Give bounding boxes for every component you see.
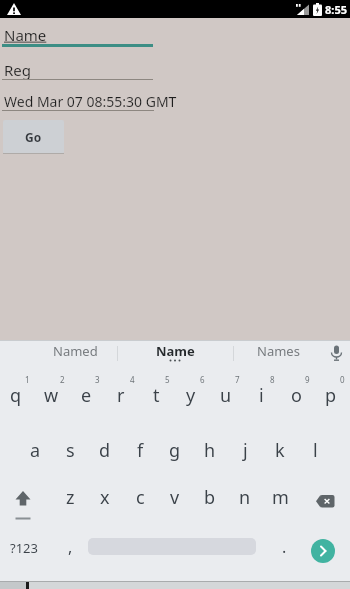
staticText: 3 [95, 374, 100, 385]
staticText: p [325, 383, 337, 408]
staticText: a [30, 438, 41, 463]
staticText: Reg [4, 60, 32, 80]
staticText: 0 [340, 374, 345, 385]
staticText: l [313, 438, 318, 463]
staticText: 7 [235, 374, 240, 385]
staticText: x [100, 485, 110, 510]
staticText: Go [25, 129, 42, 145]
staticText: . [282, 536, 287, 558]
staticText: 8:55 [325, 2, 347, 17]
staticText: i [259, 383, 264, 408]
staticText: f [137, 438, 144, 463]
staticText: n [239, 485, 251, 510]
staticText: 4 [130, 374, 135, 385]
staticText: 1 [25, 374, 30, 385]
staticText: v [170, 485, 180, 510]
staticText: c [136, 485, 145, 510]
staticText: j [243, 438, 248, 463]
staticText: w [44, 383, 59, 408]
staticText: u [220, 383, 232, 408]
staticText: g [169, 438, 181, 463]
staticText: Named [53, 342, 98, 360]
staticText: b [204, 485, 216, 510]
staticText: z [66, 485, 75, 510]
staticText: d [99, 438, 111, 463]
staticText: Wed Mar 07 08:55:30 GMT [4, 92, 177, 111]
staticText: q [10, 383, 22, 408]
staticText: 6 [200, 374, 205, 385]
staticText: Name [156, 342, 195, 360]
staticText: ?123 [10, 539, 38, 557]
staticText: 2 [60, 374, 65, 385]
staticText: 8 [270, 374, 275, 385]
staticText: h [204, 438, 216, 463]
staticText: y [186, 383, 196, 408]
staticText: k [275, 438, 285, 463]
staticText: 9 [305, 374, 310, 385]
staticText: 5 [165, 374, 170, 385]
staticText: s [66, 438, 75, 463]
staticText: , [68, 536, 73, 558]
staticText: e [81, 383, 92, 408]
staticText: t [153, 383, 160, 408]
staticText: o [291, 383, 302, 408]
staticText: m [272, 485, 289, 510]
staticText: r [117, 383, 125, 408]
staticText: Names [257, 342, 300, 360]
staticText: Name [4, 25, 47, 45]
